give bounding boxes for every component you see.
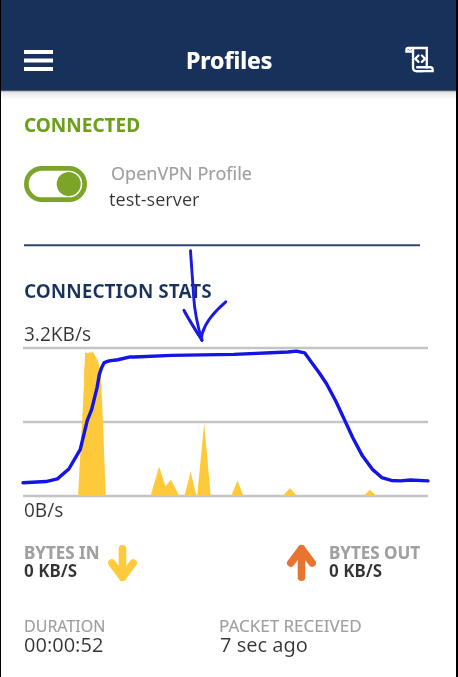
staticText: OpenVPN Profile <box>111 161 252 186</box>
staticText: 3.2KB/s <box>24 321 92 347</box>
staticText: 7 sec ago <box>220 631 308 658</box>
staticText: BYTES OUT <box>329 541 421 564</box>
button[interactable]: Import profile <box>398 38 442 82</box>
staticText: 0 KB/S <box>329 559 383 582</box>
staticText: 00:00:52 <box>24 631 104 658</box>
staticText: BYTES IN <box>24 541 100 564</box>
staticText: PACKET RECEIVED <box>219 614 362 637</box>
button[interactable]: Open navigation menu <box>16 38 60 82</box>
staticText: 0 KB/S <box>24 559 78 582</box>
staticText: DURATION <box>24 615 106 637</box>
staticText: test-server <box>109 187 200 212</box>
button[interactable] <box>0 160 458 208</box>
staticText: CONNECTION STATS <box>24 278 212 304</box>
staticText: 0B/s <box>24 497 64 523</box>
staticText: Profiles <box>186 44 273 75</box>
staticText: CONNECTED <box>24 112 141 138</box>
